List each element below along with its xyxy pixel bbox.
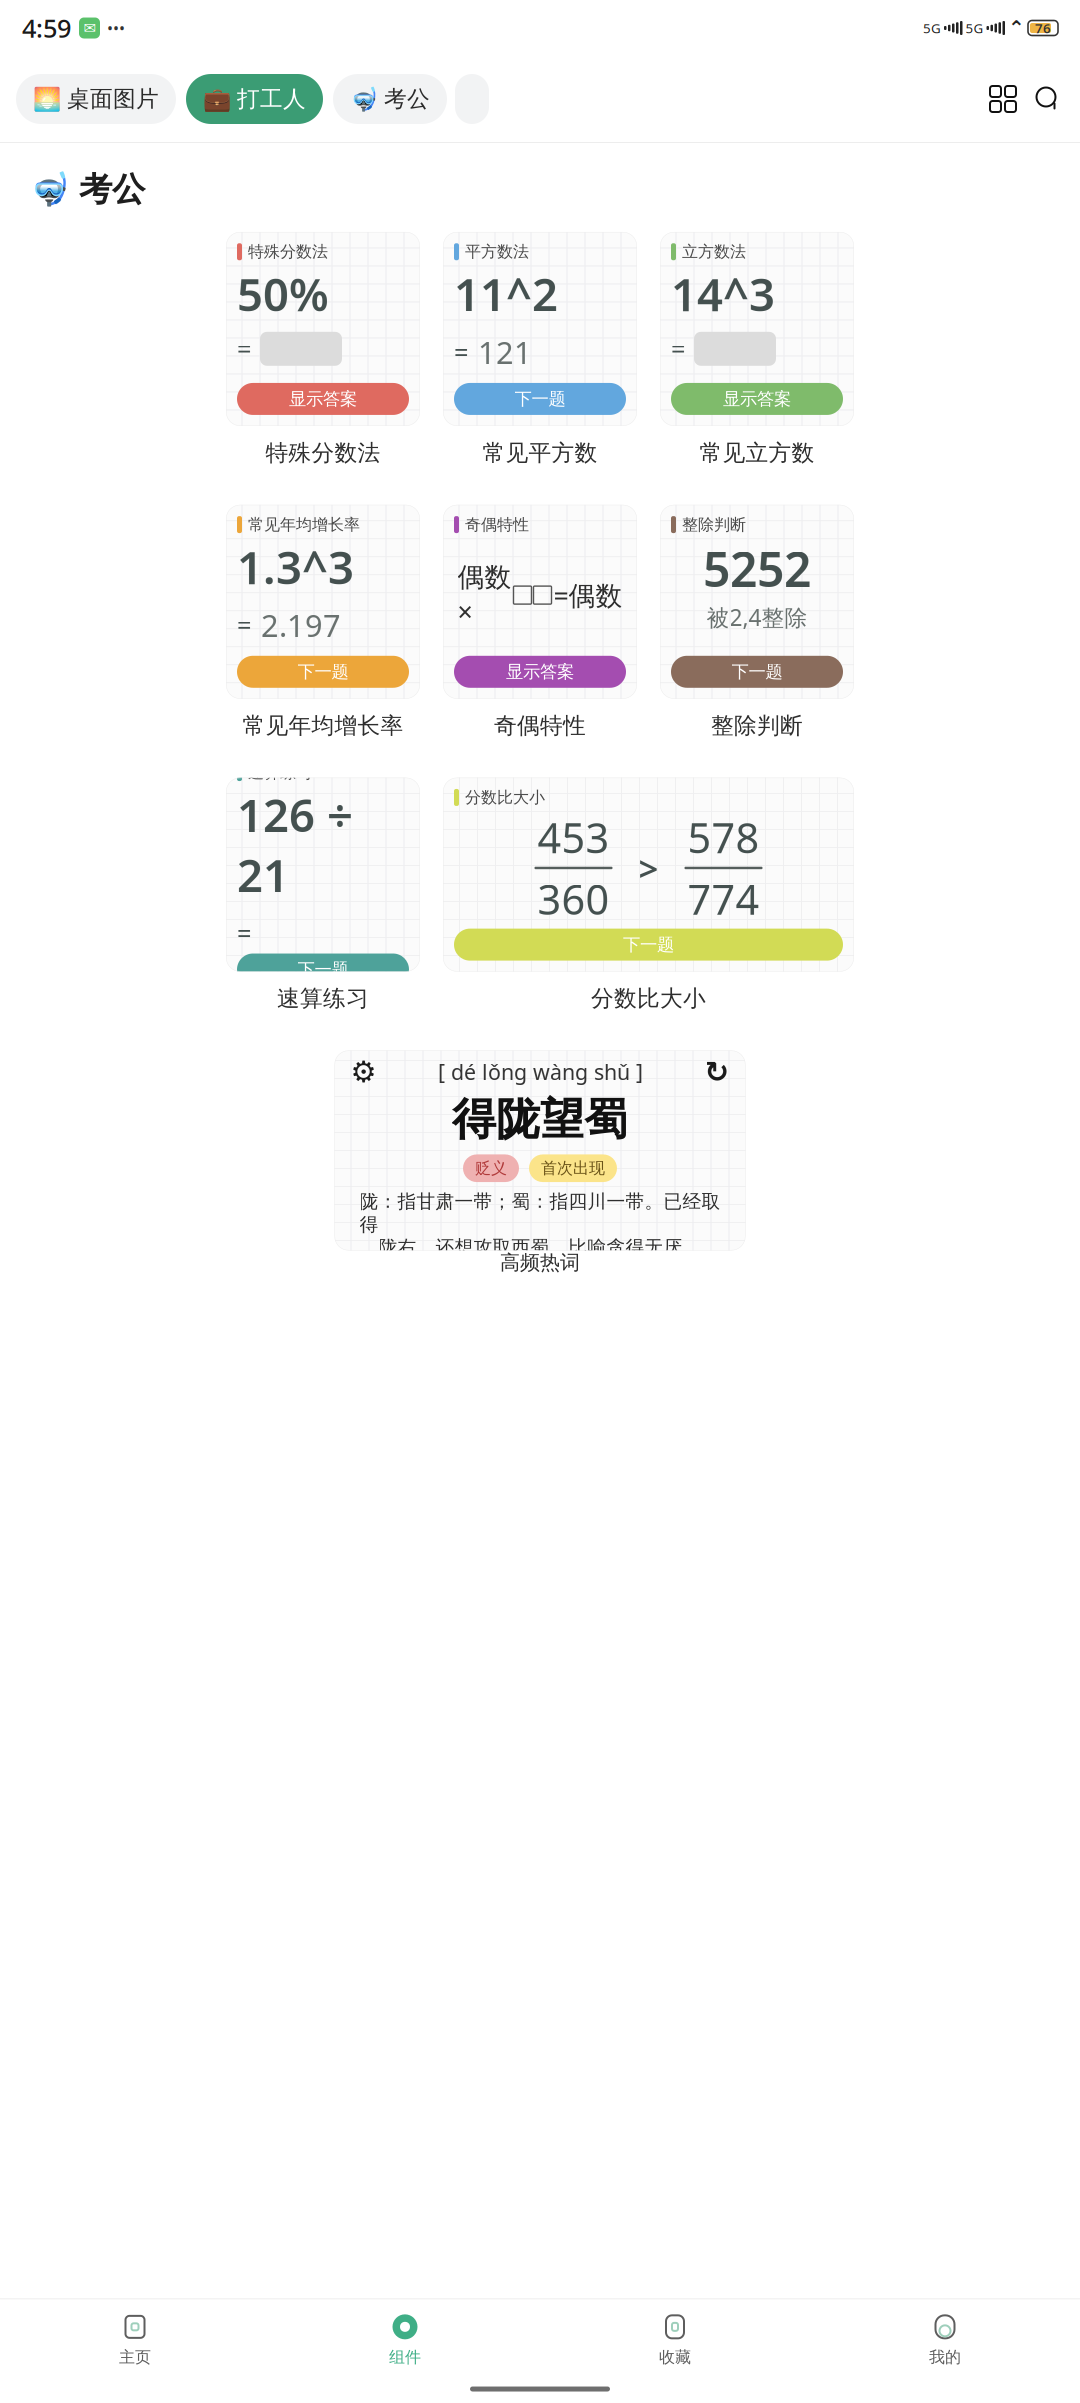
staticText: 🤿	[30, 171, 70, 208]
button[interactable]: 组件	[270, 2305, 540, 2375]
button[interactable]: 我的	[810, 2305, 1080, 2375]
button[interactable]: Settings	[350, 1055, 376, 1088]
staticText: 考公	[79, 169, 145, 210]
staticText: 陇右，还想攻取西蜀。比喻贪得无厌。	[378, 1236, 701, 1259]
button[interactable]: 显示答案	[671, 383, 843, 415]
staticText: 主页	[119, 2347, 151, 2367]
staticText: 首次出现	[541, 1158, 605, 1178]
staticText: =	[237, 332, 251, 366]
staticText: 速算练习	[277, 985, 369, 1012]
staticText: 考公	[384, 85, 430, 113]
staticText: ✉	[83, 20, 95, 36]
staticText: ⚙	[350, 1055, 376, 1088]
staticText: 578	[687, 810, 759, 865]
staticText: 453	[537, 810, 609, 865]
staticText: 整除判断	[682, 515, 746, 534]
staticText: 特殊分数法	[265, 439, 380, 467]
staticText: 我的	[929, 2347, 961, 2367]
staticText: ⌃	[1008, 17, 1025, 39]
staticText: 组件	[389, 2347, 421, 2367]
button[interactable]: 显示答案	[237, 383, 409, 415]
button[interactable]: 🎵	[455, 74, 489, 124]
staticText: 14^3	[671, 264, 775, 324]
staticText: 收藏	[659, 2347, 691, 2367]
button[interactable]: 主页	[0, 2305, 270, 2375]
staticText: 11^2	[454, 264, 558, 324]
staticText: 126 ÷ 21	[237, 784, 353, 905]
staticText: [ dé lǒng wàng shǔ ]	[438, 1058, 643, 1086]
button[interactable]: 下一题	[237, 953, 409, 985]
staticText: 奇偶特性	[465, 515, 529, 534]
staticText: 121	[478, 332, 532, 372]
staticText: 76	[1035, 19, 1051, 37]
button[interactable]: 🤿	[333, 74, 447, 124]
staticText: 🤿	[350, 86, 378, 112]
button[interactable]: 🌅	[16, 74, 176, 124]
staticText: 速算练习	[248, 763, 312, 782]
staticText: 下一题	[297, 959, 348, 980]
staticText: 被2,4整除	[706, 602, 807, 632]
staticText: 5G	[965, 19, 983, 37]
staticText: 2.197	[261, 605, 341, 645]
staticText: 5252	[703, 536, 811, 600]
button[interactable]: 显示答案	[454, 656, 626, 688]
staticText: 特殊分数法	[248, 242, 328, 262]
staticText: 贬义	[475, 1158, 507, 1178]
staticText: 显示答案	[723, 388, 791, 410]
staticText: =偶数	[553, 577, 622, 613]
button[interactable]: 下一题	[454, 383, 626, 415]
staticText: 常见立方数	[699, 439, 814, 467]
staticText: >	[638, 845, 658, 891]
staticText: 打工人	[237, 85, 306, 113]
staticText: =	[671, 332, 685, 366]
staticText: 立方数法	[682, 242, 746, 262]
button[interactable]: Search	[1026, 77, 1070, 121]
staticText: =	[237, 916, 251, 950]
button[interactable]: 收藏	[540, 2305, 810, 2375]
staticText: 奇偶特性	[494, 712, 586, 740]
staticText: =	[454, 335, 468, 369]
staticText: 💼	[203, 86, 231, 112]
staticText: =	[237, 608, 251, 642]
staticText: 下一题	[297, 661, 348, 682]
staticText: •••	[107, 17, 125, 39]
button[interactable]: 💼	[186, 74, 323, 124]
button[interactable]: Refresh	[704, 1055, 729, 1088]
staticText: 常见年均增长率	[248, 515, 360, 534]
button[interactable]: 下一题	[454, 929, 843, 961]
staticText: 774	[687, 871, 759, 926]
button[interactable]: All categories	[980, 76, 1026, 122]
staticText: 下一题	[731, 661, 782, 682]
staticText: 50%	[237, 264, 329, 324]
staticText: 5G	[923, 19, 941, 37]
staticText: 偶数×	[457, 561, 511, 629]
staticText: 高频热词	[500, 1250, 580, 1275]
staticText: 显示答案	[289, 388, 357, 410]
staticText: 分数比大小	[465, 788, 545, 807]
staticText: 下一题	[514, 388, 565, 410]
staticText: 分数比大小	[591, 985, 706, 1012]
staticText: 陇：指甘肃一带；蜀：指四川一带。已经取得	[359, 1190, 720, 1236]
button[interactable]: 下一题	[671, 656, 843, 688]
staticText: 1.3^3	[237, 536, 354, 597]
staticText: 下一题	[623, 934, 674, 955]
staticText: 4:59	[22, 11, 71, 45]
staticText: 得陇望蜀	[452, 1092, 628, 1146]
staticText: 桌面图片	[67, 85, 159, 113]
staticText: 显示答案	[506, 661, 574, 682]
button[interactable]: 下一题	[237, 656, 409, 688]
staticText: 常见平方数	[482, 439, 597, 467]
staticText: 🌅	[33, 86, 61, 112]
staticText: 整除判断	[711, 712, 803, 740]
staticText: 平方数法	[465, 242, 529, 262]
staticText: 360	[537, 871, 609, 926]
staticText: 常见年均增长率	[242, 712, 403, 740]
staticText: ↻	[704, 1055, 729, 1088]
